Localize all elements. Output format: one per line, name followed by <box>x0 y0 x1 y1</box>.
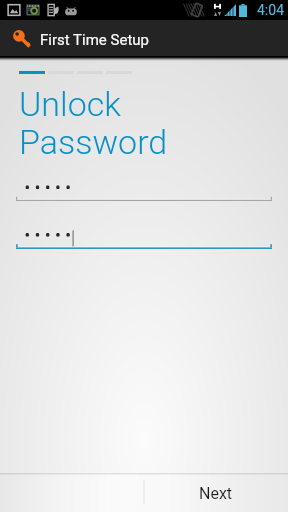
button[interactable]: Next <box>144 473 288 512</box>
button[interactable]: Back <box>0 473 144 512</box>
button[interactable]: Password field <box>16 179 272 201</box>
button[interactable]: Password field <box>16 227 272 249</box>
button[interactable]: App icon <box>0 20 288 56</box>
staticText: Unlock Password <box>19 84 168 163</box>
staticText: 4:04 <box>257 2 284 18</box>
staticText: Next <box>199 484 233 503</box>
other: App icon <box>13 30 31 48</box>
staticText: First Time Setup <box>40 31 149 49</box>
